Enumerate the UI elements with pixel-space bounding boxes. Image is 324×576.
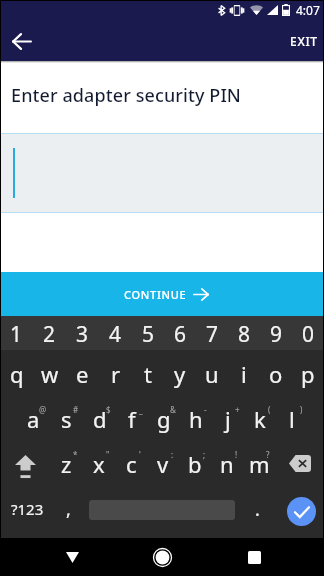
button[interactable]: Backspace <box>275 443 324 488</box>
button[interactable]: u <box>196 353 228 398</box>
staticText: z <box>61 449 72 479</box>
button[interactable]: Back <box>52 538 92 576</box>
staticText: t <box>144 359 152 389</box>
button[interactable]: a <box>17 398 50 443</box>
button[interactable]: b <box>179 443 211 488</box>
button[interactable]: j <box>212 398 244 443</box>
staticText: o <box>269 359 283 389</box>
staticText: 2 <box>43 320 56 349</box>
button[interactable]: ?123 <box>0 488 55 533</box>
button[interactable]: Done <box>287 497 316 526</box>
staticText: x <box>93 449 105 479</box>
button[interactable]: 6 <box>164 316 196 350</box>
staticText: 6 <box>174 320 187 349</box>
button[interactable]: Back <box>4 23 40 59</box>
staticText: s <box>61 404 72 434</box>
button[interactable]: Home <box>142 538 182 576</box>
staticText: # <box>73 404 79 415</box>
staticText: 0 <box>302 320 315 349</box>
staticText: y <box>174 359 186 389</box>
staticText: , <box>66 497 71 522</box>
button[interactable]: g <box>148 398 180 443</box>
staticText: n <box>220 449 234 479</box>
staticText: . <box>255 497 260 522</box>
staticText: * <box>73 449 78 460</box>
button[interactable]: Recents <box>234 538 274 576</box>
staticText: w <box>41 359 59 389</box>
staticText: EXIT <box>290 33 318 49</box>
staticText: $ <box>106 404 111 415</box>
staticText: 5 <box>142 320 155 349</box>
button[interactable]: d <box>83 398 116 443</box>
staticText: CONTINUE <box>124 287 187 302</box>
staticText: b <box>188 449 202 479</box>
button[interactable]: 5 <box>132 316 164 350</box>
staticText: l <box>289 404 295 434</box>
button[interactable]: x <box>83 443 115 488</box>
staticText: 4:07 <box>296 2 320 18</box>
button[interactable]: k <box>244 398 276 443</box>
button[interactable]: EXIT <box>284 25 324 57</box>
staticText: + <box>235 404 240 415</box>
button[interactable]: 8 <box>228 316 260 350</box>
button[interactable]: o <box>260 353 292 398</box>
button[interactable]: m <box>243 443 275 488</box>
button[interactable]: e <box>66 353 99 398</box>
staticText: ) <box>300 404 303 415</box>
button[interactable]: q <box>0 353 33 398</box>
button[interactable]: p <box>292 353 324 398</box>
button[interactable]: i <box>228 353 260 398</box>
button[interactable]: v <box>147 443 179 488</box>
button[interactable]: t <box>132 353 164 398</box>
staticText: & <box>170 404 176 415</box>
button[interactable]: 2 <box>33 316 66 350</box>
staticText: m <box>249 449 270 479</box>
staticText: k <box>254 404 266 434</box>
button[interactable]: 4 <box>99 316 132 350</box>
staticText: f <box>128 404 136 434</box>
button[interactable]: z <box>50 443 83 488</box>
button[interactable]: . <box>235 488 279 533</box>
button[interactable]: r <box>99 353 132 398</box>
button[interactable]: l <box>276 398 308 443</box>
staticText: 3 <box>76 320 89 349</box>
staticText: - <box>204 404 207 415</box>
staticText: ! <box>235 449 238 460</box>
staticText: a <box>27 404 40 434</box>
staticText: 9 <box>270 320 283 349</box>
staticText: : <box>171 449 174 460</box>
staticText: u <box>205 359 219 389</box>
button[interactable]: 1 <box>0 316 33 350</box>
button[interactable]: n <box>211 443 243 488</box>
button[interactable]: Shift <box>0 443 50 488</box>
button[interactable]: h <box>180 398 212 443</box>
button[interactable]: f <box>116 398 148 443</box>
staticText: 1 <box>10 320 23 349</box>
staticText: ( <box>268 404 271 415</box>
staticText: h <box>189 404 203 434</box>
staticText: ? <box>266 449 270 460</box>
staticText: " <box>106 449 110 460</box>
button[interactable]: y <box>164 353 196 398</box>
button[interactable]: 7 <box>196 316 228 350</box>
staticText: 8 <box>238 320 251 349</box>
staticText: v <box>157 449 169 479</box>
staticText: g <box>157 404 171 434</box>
staticText: c <box>126 449 137 479</box>
button[interactable]: 3 <box>66 316 99 350</box>
staticText: Enter adapter security PIN <box>11 83 241 108</box>
staticText: 7 <box>206 320 219 349</box>
staticText: ' <box>139 449 141 460</box>
button[interactable]: 0 <box>292 316 324 350</box>
button[interactable]: s <box>50 398 83 443</box>
staticText: 4 <box>109 320 122 349</box>
button[interactable]: c <box>115 443 147 488</box>
button[interactable]: w <box>33 353 66 398</box>
staticText: ; <box>203 449 206 460</box>
button[interactable]: 9 <box>260 316 292 350</box>
button[interactable]: CONTINUE <box>0 272 324 316</box>
button[interactable]: , <box>51 488 85 533</box>
staticText: @ <box>39 404 47 415</box>
staticText: p <box>301 359 315 389</box>
